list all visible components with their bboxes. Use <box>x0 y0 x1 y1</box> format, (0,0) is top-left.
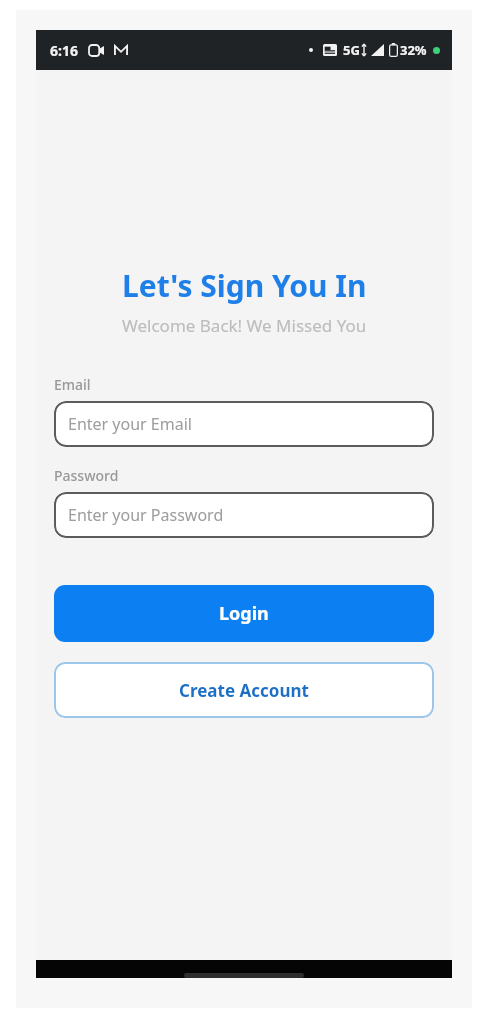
staticText: Login <box>219 601 269 626</box>
button[interactable]: Login <box>54 585 434 642</box>
button[interactable]: Enter your Password <box>54 492 434 538</box>
staticText: Enter your Password <box>68 504 224 526</box>
staticText: Welcome Back! We Missed You <box>122 314 367 337</box>
staticText: 32% <box>400 41 427 59</box>
staticText: Email <box>54 375 91 394</box>
staticText: Let's Sign You In <box>122 265 367 306</box>
staticText: 6:16 <box>50 41 78 60</box>
button[interactable]: Enter your Email <box>54 401 434 447</box>
button[interactable]: Create Account <box>54 662 434 718</box>
staticText: Create Account <box>179 679 309 702</box>
staticText: Enter your Email <box>68 413 192 435</box>
staticText: Password <box>54 466 119 485</box>
staticText: 5G <box>343 41 360 59</box>
